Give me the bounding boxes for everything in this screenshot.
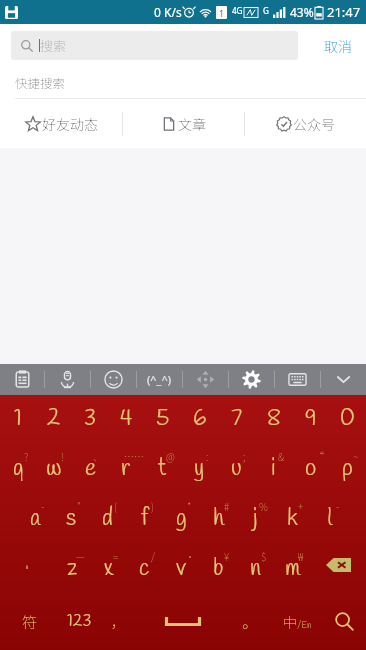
button[interactable]: 4 — [108, 395, 144, 443]
staticText: 3 — [84, 404, 97, 435]
staticText: — — [76, 549, 85, 563]
button[interactable]: " — [53, 493, 89, 543]
button[interactable]: - — [17, 493, 53, 543]
button[interactable]: Space — [137, 593, 228, 650]
staticText: 文章 — [178, 114, 206, 134]
staticText: t — [158, 454, 167, 485]
button[interactable]: Emoji — [91, 364, 136, 395]
button[interactable]: 。 — [228, 593, 271, 650]
button[interactable]: 2 — [36, 395, 72, 443]
staticText: 搜索 — [40, 36, 67, 55]
staticText: q — [13, 454, 24, 485]
button[interactable]: 符 — [0, 593, 59, 650]
button[interactable]: Search — [323, 593, 366, 650]
button[interactable]: ; — [218, 443, 255, 493]
button[interactable]: 、 — [72, 443, 108, 493]
staticText: ? — [24, 449, 29, 463]
staticText: # — [224, 499, 230, 513]
button[interactable]: ， — [100, 593, 137, 650]
staticText: 7 — [231, 404, 243, 435]
button[interactable]: 7 — [218, 395, 255, 443]
staticText: w — [46, 454, 62, 485]
staticText: - — [41, 499, 45, 513]
button[interactable]: ₩ — [274, 543, 311, 593]
staticText: 0 K/s — [154, 4, 182, 20]
button[interactable]: “ — [292, 443, 329, 493]
button[interactable]: 8 — [255, 395, 292, 443]
button[interactable]: / — [126, 543, 163, 593]
staticText: k — [287, 504, 298, 535]
button[interactable]: Keyboard layout — [275, 364, 320, 395]
button[interactable]: 取消 — [324, 24, 352, 67]
button[interactable]: ? — [0, 443, 36, 493]
button[interactable]: & — [255, 443, 292, 493]
button[interactable]: …… — [108, 443, 144, 493]
staticText: …… — [124, 449, 144, 463]
staticText: /En — [297, 620, 312, 632]
staticText: “ — [314, 449, 324, 463]
button[interactable]: 中 — [271, 593, 323, 650]
button[interactable]: · — [163, 543, 200, 593]
staticText: 中 — [283, 612, 297, 632]
staticText: u — [231, 454, 242, 485]
button[interactable]: 0 — [329, 395, 366, 443]
button[interactable]: 文章 — [123, 99, 244, 148]
button[interactable]: Clipboard — [0, 364, 44, 395]
button[interactable]: 1 — [0, 395, 36, 443]
button[interactable]: ! — [36, 443, 72, 493]
button[interactable]: Shift — [0, 543, 54, 593]
button[interactable]: 9 — [292, 395, 329, 443]
staticText: 1 — [14, 404, 22, 435]
staticText: p — [342, 454, 353, 485]
staticText: 符 — [22, 611, 38, 633]
button[interactable]: % — [237, 493, 274, 543]
staticText: e — [85, 454, 96, 485]
button[interactable]: Voice input — [45, 364, 90, 395]
staticText: 4G — [232, 5, 243, 16]
button[interactable]: = — [90, 543, 126, 593]
staticText: 取消 — [324, 36, 352, 56]
staticText: G — [263, 5, 269, 16]
button[interactable]: (^_^) — [137, 364, 182, 395]
staticText: x — [104, 554, 113, 585]
button[interactable]: ( — [89, 493, 126, 543]
staticText: ~ — [353, 449, 359, 463]
button[interactable]: 5 — [144, 395, 181, 443]
staticText: ) — [151, 499, 154, 513]
button[interactable]: @ — [144, 443, 181, 493]
staticText: 9 — [305, 404, 317, 435]
button[interactable]: ) — [126, 493, 163, 543]
staticText: 、 — [93, 449, 103, 463]
button[interactable]: - — [311, 493, 348, 543]
staticText: 公众号 — [293, 114, 335, 134]
staticText: 快捷搜索 — [15, 73, 66, 91]
button[interactable]: Move cursor — [183, 364, 228, 395]
button[interactable]: 公众号 — [245, 99, 366, 148]
staticText: · — [185, 549, 195, 563]
button[interactable]: Settings — [229, 364, 274, 395]
button[interactable]: * — [163, 493, 200, 543]
staticText: 6 — [193, 404, 207, 435]
staticText: % — [259, 499, 268, 513]
button[interactable]: Hide keyboard — [321, 364, 366, 395]
button[interactable]: 好友动态 — [0, 99, 122, 148]
staticText: 1 — [219, 7, 225, 19]
staticText: o — [305, 454, 317, 485]
button[interactable]: : — [181, 443, 218, 493]
staticText: z — [67, 554, 78, 585]
button[interactable]: 123 — [59, 593, 100, 650]
button[interactable]: ¥ — [200, 543, 237, 593]
button[interactable]: 3 — [72, 395, 108, 443]
button[interactable]: $ — [237, 543, 274, 593]
staticText: * — [187, 499, 192, 513]
button[interactable]: + — [274, 493, 311, 543]
button[interactable]: 搜索 — [11, 31, 298, 60]
button[interactable]: — — [54, 543, 90, 593]
button[interactable]: ~ — [329, 443, 366, 493]
staticText: r — [121, 454, 131, 485]
button[interactable]: 6 — [181, 395, 218, 443]
button[interactable]: Delete — [311, 543, 366, 593]
staticText: $ — [261, 549, 267, 563]
staticText: 8 — [267, 404, 281, 435]
button[interactable]: # — [200, 493, 237, 543]
